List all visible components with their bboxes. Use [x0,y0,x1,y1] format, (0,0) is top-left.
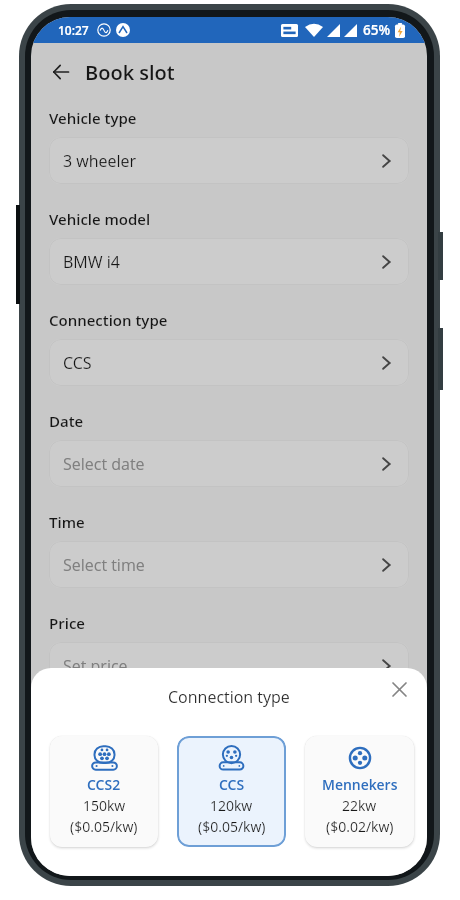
button[interactable]: Mennekers [305,736,414,847]
staticText: CCS [219,775,245,794]
staticText: 22kw [342,796,377,815]
staticText: 3 wheeler [63,150,137,172]
staticText: Select time [63,554,145,576]
button[interactable]: CCS [177,736,286,847]
staticText: Vehicle type [49,108,137,128]
staticText: BMW i4 [63,251,120,273]
staticText: Book slot [85,59,175,86]
staticText: ($0.05/kw) [198,817,266,836]
button[interactable]: Close [386,676,412,702]
staticText: 10:27 [58,22,89,38]
button[interactable]: BMW i4 [49,238,409,285]
staticText: Price [49,613,85,633]
button[interactable]: Back [49,57,73,87]
staticText: Connection type [168,686,290,708]
staticText: 65% [363,21,391,39]
staticText: CCS2 [87,775,121,794]
button[interactable]: Set price [49,642,409,689]
button[interactable]: Select time [49,541,409,588]
staticText: Set price [63,655,128,677]
staticText: Vehicle model [49,209,151,229]
staticText: 120kw [210,796,253,815]
staticText: Select date [63,453,145,475]
staticText: Time [49,512,85,532]
staticText: Connection type [49,310,168,330]
staticText: 150kw [83,796,126,815]
button[interactable]: Select date [49,440,409,487]
staticText: ($0.05/kw) [70,817,138,836]
button[interactable]: CCS [49,339,409,386]
staticText: Date [49,411,84,431]
button[interactable]: CCS2 [50,736,158,847]
staticText: Mennekers [322,775,398,794]
staticText: CCS [63,352,92,374]
button[interactable]: 3 wheeler [49,137,409,184]
staticText: ($0.02/kw) [326,817,394,836]
